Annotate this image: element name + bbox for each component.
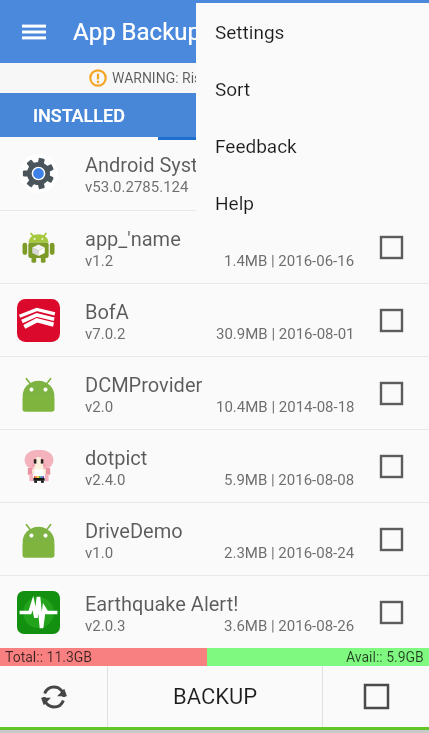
button[interactable]: SYSTEM bbox=[158, 93, 429, 137]
button[interactable]: BofA bbox=[0, 284, 429, 356]
staticText: Earthquake Alert! bbox=[85, 592, 239, 615]
staticText: v2.4.0 bbox=[85, 471, 126, 489]
button[interactable]: Select app bbox=[353, 576, 429, 648]
button[interactable]: Select app bbox=[353, 284, 429, 356]
button[interactable]: Feedback bbox=[196, 117, 429, 174]
button[interactable]: dotpict bbox=[0, 430, 429, 502]
button[interactable]: Settings bbox=[196, 3, 429, 60]
staticText: Help bbox=[215, 192, 254, 214]
button[interactable]: DriveDemo bbox=[0, 503, 429, 575]
staticText: Settings bbox=[215, 21, 285, 43]
staticText: 30.9MB | 2016-08-01 bbox=[216, 325, 355, 343]
button[interactable]: app_'name bbox=[0, 211, 429, 283]
staticText: 3.6MB | 2016-08-26 bbox=[224, 617, 355, 635]
staticText: App Backup bbox=[73, 18, 202, 46]
staticText: dotpict bbox=[85, 446, 148, 469]
staticText: v1.0 bbox=[85, 544, 114, 562]
button[interactable]: Android System bbox=[0, 137, 429, 210]
button[interactable]: DCMProvider bbox=[0, 357, 429, 429]
staticText: v53.0.2785.124 bbox=[85, 178, 189, 196]
button[interactable]: INSTALLED bbox=[0, 93, 158, 137]
button[interactable]: Select app bbox=[353, 503, 429, 575]
staticText: DCMProvider bbox=[85, 373, 203, 396]
button[interactable]: Refresh bbox=[0, 666, 107, 727]
staticText: BofA bbox=[85, 300, 129, 323]
staticText: v1.2 bbox=[85, 252, 114, 270]
staticText: WARNING: Risky system app backup bbox=[112, 70, 340, 86]
staticText: v2.0.3 bbox=[85, 617, 126, 635]
staticText: 10.4MB | 2014-08-18 bbox=[216, 398, 355, 416]
button[interactable]: Select app bbox=[353, 211, 429, 283]
staticText: Sort bbox=[215, 78, 251, 100]
staticText: Total:: 11.3GB bbox=[5, 649, 93, 665]
staticText: Feedback bbox=[215, 135, 297, 157]
button[interactable]: Select all bbox=[323, 666, 429, 727]
staticText: app_'name bbox=[85, 227, 181, 250]
button[interactable]: Open navigation drawer bbox=[12, 10, 56, 54]
staticText: BACKUP bbox=[173, 684, 258, 710]
button[interactable]: Earthquake Alert! bbox=[0, 576, 429, 648]
staticText: Android System bbox=[85, 153, 226, 176]
staticText: Avail:: 5.9GB bbox=[346, 649, 424, 665]
staticText: INSTALLED bbox=[33, 105, 126, 126]
button[interactable]: Select app bbox=[353, 357, 429, 429]
button[interactable]: BACKUP bbox=[108, 666, 322, 727]
staticText: 5.9MB | 2016-08-08 bbox=[224, 471, 355, 489]
staticText: DriveDemo bbox=[85, 519, 183, 542]
staticText: 2.3MB | 2016-08-24 bbox=[224, 544, 355, 562]
button[interactable]: Help bbox=[196, 174, 429, 231]
staticText: v2.0 bbox=[85, 398, 114, 416]
button[interactable]: Sort bbox=[196, 60, 429, 117]
staticText: 1.4MB | 2016-06-16 bbox=[224, 252, 355, 270]
staticText: v7.0.2 bbox=[85, 325, 126, 343]
button[interactable]: Select app bbox=[353, 430, 429, 502]
